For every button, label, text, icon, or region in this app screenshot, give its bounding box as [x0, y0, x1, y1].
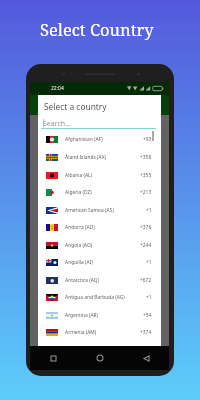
- staticText: +672: [140, 277, 152, 284]
- staticText: +358: [140, 154, 152, 161]
- button[interactable]: Recent apps: [30, 346, 77, 370]
- button[interactable]: American Samoa (AS): [38, 202, 161, 219]
- button[interactable]: Armenia (AM): [38, 324, 161, 341]
- staticText: Antigua and Barbuda (AG): [65, 294, 125, 301]
- button[interactable]: Angola (AO): [38, 237, 161, 254]
- button[interactable]: Antarctica (AQ): [38, 272, 161, 289]
- button[interactable]: Algeria (DZ): [38, 184, 161, 201]
- staticText: Antarctica (AQ): [65, 277, 100, 284]
- staticText: 22:04: [51, 85, 64, 92]
- button[interactable]: Home: [77, 346, 123, 370]
- staticText: +244: [140, 242, 152, 249]
- button[interactable]: Anguilla (AI): [38, 254, 161, 271]
- staticText: Angola (AO): [65, 242, 93, 249]
- staticText: Åland Islands (AX): [65, 154, 107, 161]
- staticText: +1: [146, 294, 152, 301]
- button[interactable]: Albania (AL): [38, 167, 161, 184]
- button[interactable]: Afghanistan (AF): [38, 131, 161, 148]
- staticText: +93: [143, 136, 152, 143]
- staticText: +54: [143, 312, 152, 319]
- staticText: +1: [146, 259, 152, 266]
- staticText: +355: [140, 172, 152, 179]
- button[interactable]: Åland Islands (AX): [38, 149, 161, 166]
- staticText: Select a country: [44, 101, 107, 112]
- staticText: Search...: [43, 119, 71, 129]
- button[interactable]: Argentina (AR): [38, 307, 161, 324]
- button[interactable]: Back: [123, 346, 169, 370]
- staticText: Afghanistan (AF): [65, 136, 103, 143]
- staticText: Argentina (AR): [65, 312, 99, 319]
- staticText: +374: [140, 329, 152, 336]
- staticText: Armenia (AM): [65, 329, 97, 336]
- staticText: Andorra (AD): [65, 224, 95, 231]
- staticText: +213: [140, 189, 152, 196]
- staticText: Albania (AL): [65, 172, 93, 179]
- staticText: Select Country: [40, 18, 154, 40]
- button[interactable]: Antigua and Barbuda (AG): [38, 289, 161, 306]
- staticText: Anguilla (AI): [65, 259, 93, 266]
- staticText: American Samoa (AS): [65, 207, 114, 214]
- staticText: +376: [140, 224, 152, 231]
- staticText: Algeria (DZ): [65, 189, 92, 196]
- button[interactable]: Andorra (AD): [38, 219, 161, 236]
- staticText: +1: [146, 207, 152, 214]
